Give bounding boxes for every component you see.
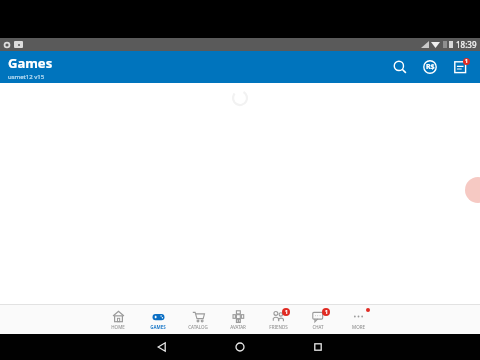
staticText: AVATAR [230,324,246,330]
button[interactable]: 1 [258,305,298,334]
button[interactable]: Search [386,53,414,81]
button[interactable]: CATALOG [178,305,218,334]
staticText: 1 [285,309,288,316]
button[interactable]: Home [220,334,260,360]
staticText: CHAT [312,324,324,330]
staticText: 1 [325,309,328,316]
staticText: Games [8,54,53,72]
button[interactable]: AVATAR [218,305,258,334]
staticText: CATALOG [188,324,208,330]
button[interactable]: 1 [298,305,338,334]
button[interactable]: HOME [98,305,138,334]
button[interactable]: MORE [338,305,378,334]
button[interactable]: Messages [446,53,474,81]
staticText: 18:39 [456,39,477,50]
staticText: usmet12 v15 [8,73,45,81]
button[interactable]: Back [142,334,182,360]
button[interactable]: Robux [416,53,444,81]
staticText: 1 [465,58,468,65]
staticText: FRIENDS [269,324,288,330]
button[interactable]: GAMES [138,305,178,334]
staticText: HOME [111,324,125,330]
staticText: MORE [352,324,365,330]
staticText: GAMES [150,324,166,330]
button[interactable]: Recent apps [298,334,338,360]
staticText: R$ [426,62,435,72]
